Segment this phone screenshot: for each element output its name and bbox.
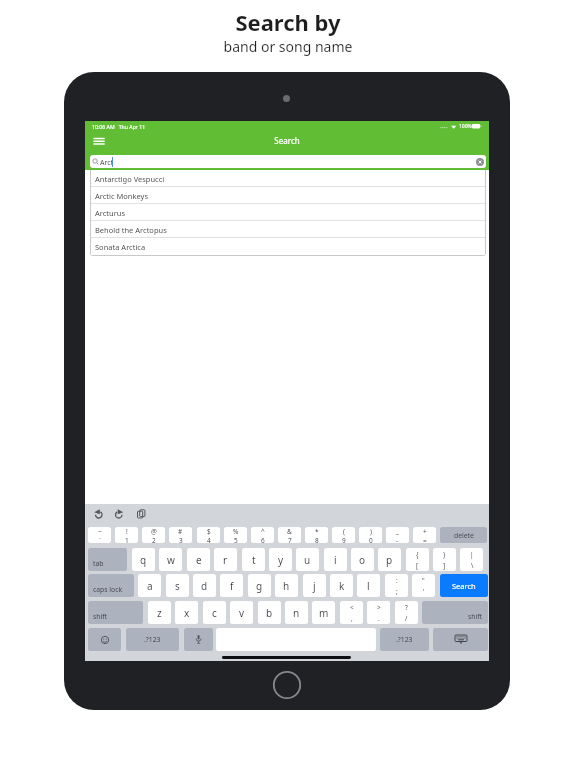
button[interactable]: v	[230, 601, 253, 624]
button[interactable]: t	[242, 548, 265, 571]
button[interactable]: Arctic Monkeys	[91, 187, 485, 204]
staticText: &	[287, 527, 292, 536]
staticText: Arcturus	[95, 208, 126, 218]
button[interactable]: f	[220, 574, 243, 597]
staticText: -	[396, 536, 399, 543]
button[interactable]: p	[378, 548, 401, 571]
button[interactable]	[184, 628, 213, 651]
staticText: 6	[261, 536, 265, 543]
staticText: {	[416, 550, 419, 559]
staticText: e	[196, 553, 202, 567]
button[interactable]: caps lock	[88, 574, 134, 597]
button[interactable]: m	[312, 601, 335, 624]
button[interactable]: %	[224, 527, 247, 543]
button[interactable]: i	[324, 548, 347, 571]
button[interactable]: u	[296, 548, 319, 571]
staticText: caps lock	[93, 585, 123, 594]
staticText: r	[223, 553, 228, 567]
staticText: \	[471, 561, 474, 570]
button[interactable]: l	[357, 574, 380, 597]
button[interactable]: ^	[251, 527, 274, 543]
button[interactable]: &	[278, 527, 301, 543]
staticText: w	[167, 553, 175, 567]
staticText: "	[422, 576, 425, 585]
button[interactable]: Behold the Arctopus	[91, 221, 485, 238]
button[interactable]: @	[142, 527, 165, 543]
button[interactable]: j	[303, 574, 326, 597]
staticText: 7	[288, 536, 292, 543]
staticText: delete	[454, 531, 474, 540]
button[interactable]: s	[166, 574, 189, 597]
button[interactable]: :	[385, 574, 408, 597]
button[interactable]: #	[169, 527, 192, 543]
button[interactable]: z	[148, 601, 171, 624]
staticText: .	[378, 614, 380, 623]
staticText: 9	[342, 536, 346, 543]
staticText: 4	[207, 536, 211, 543]
staticText: f	[230, 579, 234, 593]
button[interactable]: shift	[88, 601, 143, 624]
button[interactable]: !	[115, 527, 138, 543]
button[interactable]: Search	[440, 574, 488, 597]
button[interactable]: n	[285, 601, 308, 624]
button[interactable]: o	[351, 548, 374, 571]
button[interactable]: q	[132, 548, 155, 571]
button[interactable]: e	[187, 548, 210, 571]
button[interactable]: +	[413, 527, 436, 543]
staticText: @	[151, 527, 157, 536]
button[interactable]: y	[269, 548, 292, 571]
staticText: i	[334, 553, 337, 567]
button[interactable]: tab	[88, 548, 127, 571]
staticText: t	[252, 553, 256, 567]
button[interactable]: <	[340, 601, 363, 624]
button[interactable]: w	[159, 548, 182, 571]
button[interactable]: a	[138, 574, 161, 597]
button[interactable]: _	[386, 527, 409, 543]
button[interactable]: shift	[422, 601, 488, 624]
staticText: 1	[125, 536, 129, 543]
staticText: 10:06 AM Thu Apr 11	[92, 123, 146, 130]
button[interactable]	[89, 134, 109, 148]
button[interactable]: delete	[440, 527, 487, 543]
button[interactable]: }	[433, 548, 456, 571]
button[interactable]: d	[193, 574, 216, 597]
button[interactable]	[88, 628, 121, 651]
button[interactable]: .?123	[126, 628, 179, 651]
staticText: ^	[261, 527, 265, 536]
button[interactable]	[476, 158, 484, 166]
button[interactable]: x	[175, 601, 198, 624]
button[interactable]: Arcturus	[91, 204, 485, 221]
button[interactable]: Antarctigo Vespucci	[91, 170, 485, 187]
staticText: band or song name	[0, 37, 576, 56]
staticText: <	[350, 603, 354, 612]
button[interactable]: "	[412, 574, 435, 597]
button[interactable]: Sonata Arctica	[91, 238, 485, 255]
button[interactable]: h	[275, 574, 298, 597]
button[interactable]: b	[258, 601, 281, 624]
button[interactable]: >	[367, 601, 390, 624]
button[interactable]: *	[305, 527, 328, 543]
staticText: ]	[443, 561, 446, 570]
button[interactable]: |	[460, 548, 483, 571]
staticText: n	[293, 606, 300, 620]
staticText: h	[283, 579, 290, 593]
button[interactable]: ?	[395, 601, 418, 624]
staticText: |	[470, 550, 474, 559]
button[interactable]	[433, 628, 488, 651]
button[interactable]: )	[359, 527, 382, 543]
button[interactable]: k	[330, 574, 353, 597]
staticText: m	[319, 606, 329, 620]
button[interactable]: .?123	[380, 628, 429, 651]
staticText: Arct	[100, 158, 114, 168]
button[interactable]: ~	[88, 527, 111, 543]
button[interactable]: (	[332, 527, 355, 543]
button[interactable]: $	[197, 527, 220, 543]
button[interactable]: g	[248, 574, 271, 597]
button[interactable]: r	[214, 548, 237, 571]
staticText: o	[359, 553, 366, 567]
staticText: g	[256, 579, 263, 593]
button[interactable]: c	[203, 601, 226, 624]
staticText: s	[175, 579, 180, 593]
button[interactable]: {	[406, 548, 429, 571]
